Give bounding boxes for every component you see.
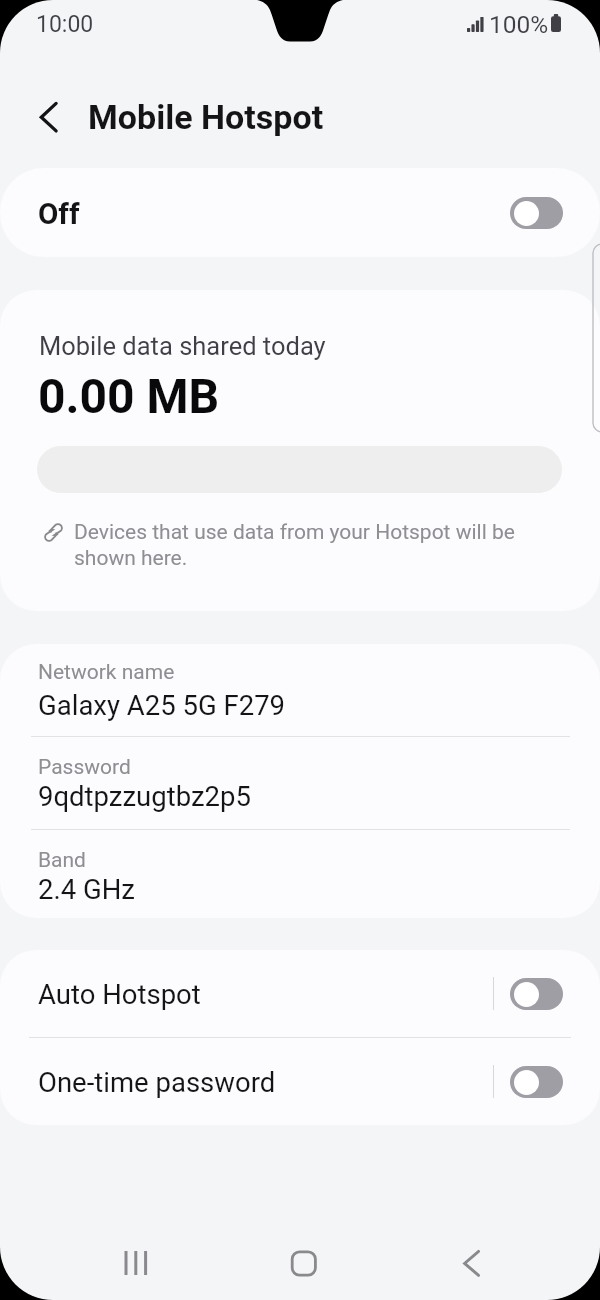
staticText: Mobile data shared today bbox=[39, 331, 326, 361]
button[interactable]: Toggle bbox=[510, 1066, 563, 1098]
button[interactable]: Home bbox=[273, 1233, 333, 1293]
button[interactable]: Toggle bbox=[510, 978, 563, 1010]
button[interactable]: Back bbox=[440, 1233, 500, 1293]
staticText: Mobile Hotspot bbox=[88, 97, 324, 137]
staticText: Network name bbox=[38, 660, 175, 685]
button[interactable]: One-time password bbox=[0, 1038, 600, 1125]
button[interactable]: Band bbox=[0, 829, 600, 918]
staticText: One-time password bbox=[38, 1066, 276, 1098]
staticText: Galaxy A25 5G F279 bbox=[38, 689, 286, 721]
staticText: 10:00 bbox=[36, 11, 94, 38]
button[interactable]: Auto Hotspot bbox=[0, 950, 600, 1037]
staticText: Auto Hotspot bbox=[38, 978, 201, 1010]
button[interactable]: Recent apps bbox=[105, 1233, 165, 1293]
staticText: Devices that use data from your Hotspot … bbox=[74, 520, 520, 570]
staticText: 2.4 GHz bbox=[38, 873, 135, 905]
button[interactable]: Navigate up bbox=[26, 94, 72, 140]
staticText: Band bbox=[38, 848, 86, 873]
staticText: 100% bbox=[489, 10, 549, 39]
button[interactable]: Toggle bbox=[510, 197, 563, 229]
staticText: 9qdtpzzugtbz2p5 bbox=[38, 780, 251, 812]
staticText: Off bbox=[38, 197, 80, 232]
staticText: 0.00 MB bbox=[38, 368, 220, 424]
button[interactable]: Network name bbox=[0, 644, 600, 736]
button[interactable]: Off bbox=[0, 168, 600, 257]
staticText: Password bbox=[38, 755, 131, 780]
button[interactable]: Password bbox=[0, 736, 600, 829]
